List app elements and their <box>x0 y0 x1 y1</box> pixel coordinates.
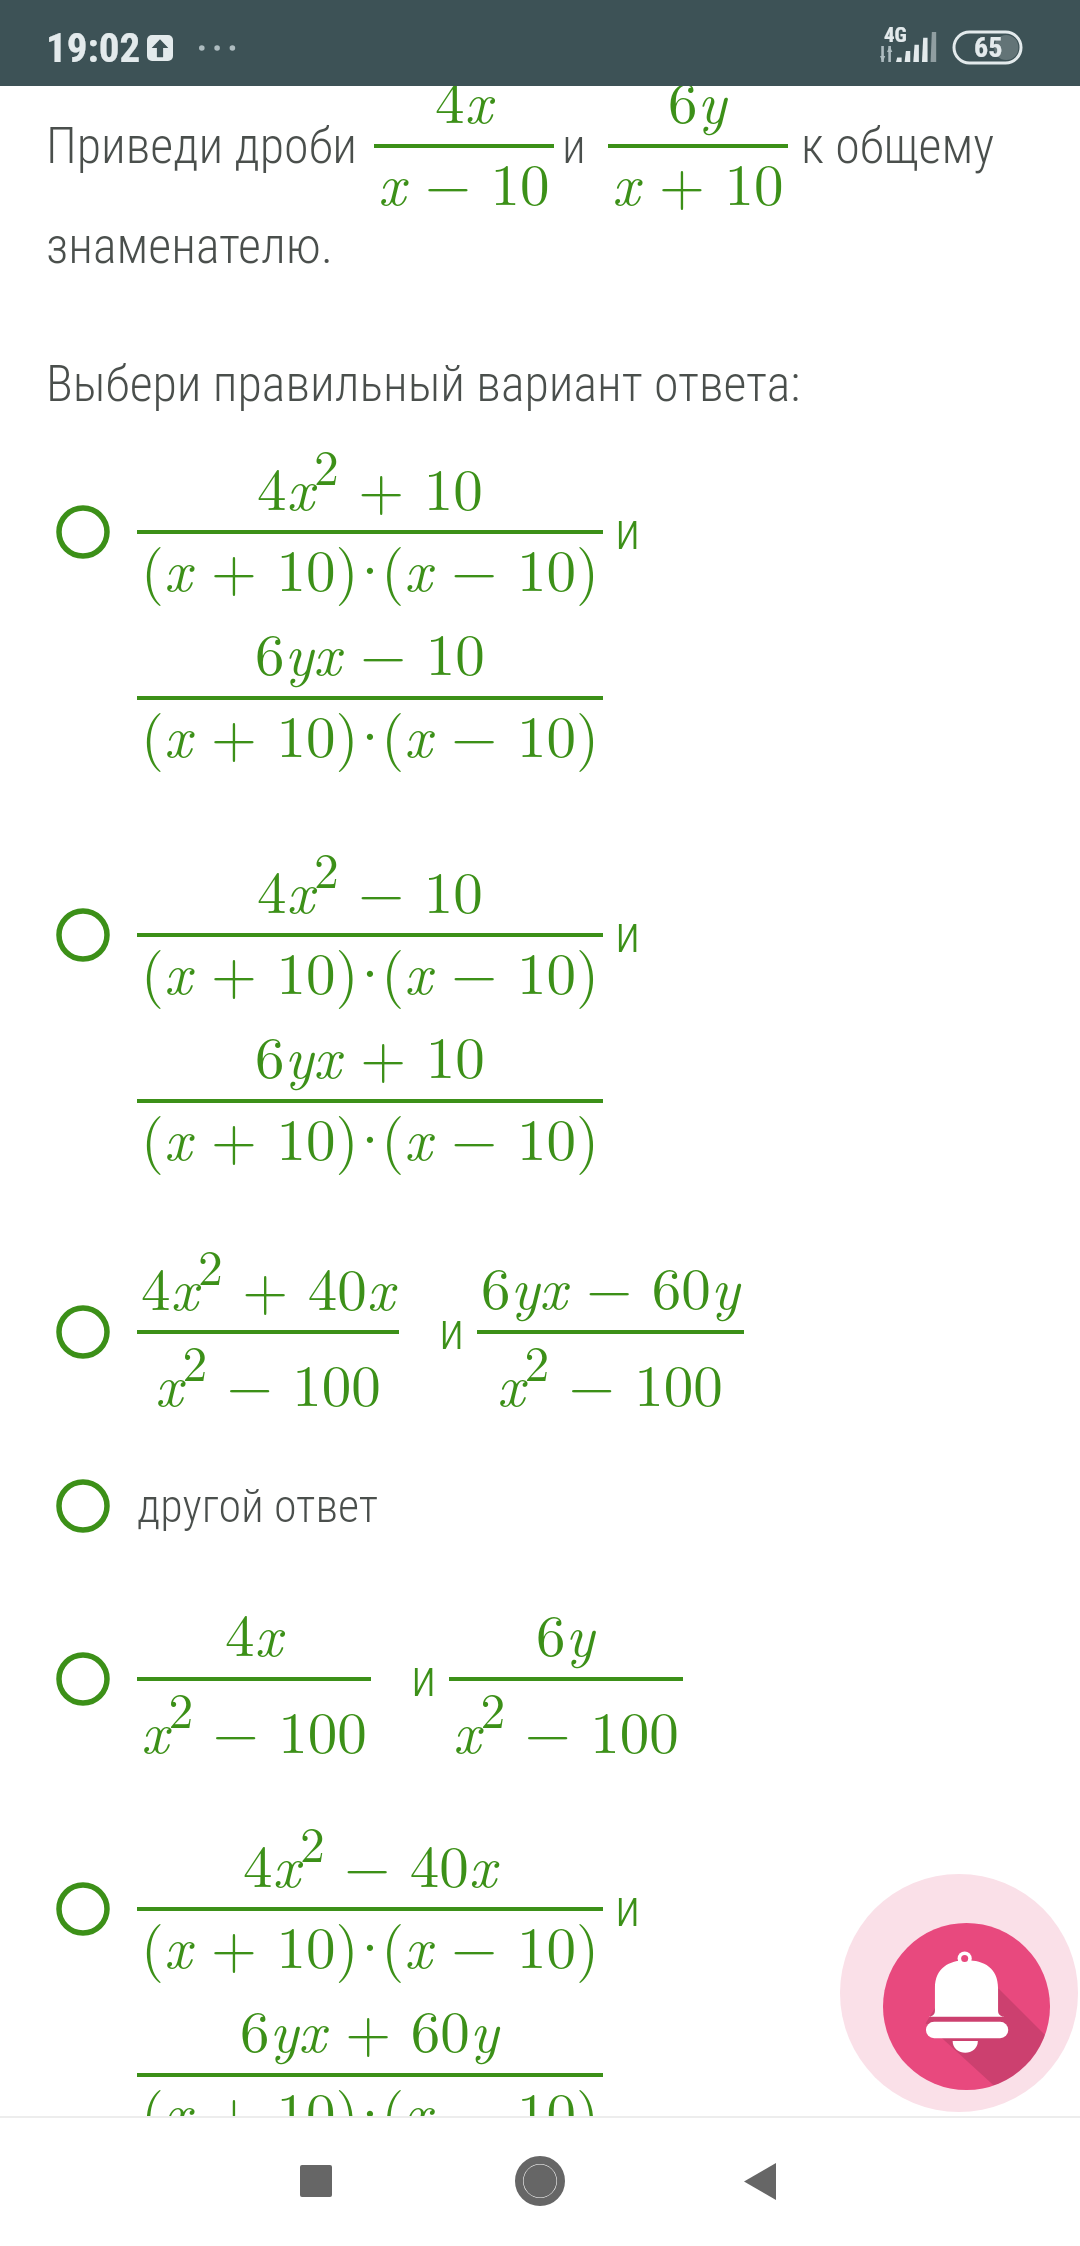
button[interactable]: 4x2 − 40x <box>0 1806 1080 2152</box>
staticText: Приведи дроби <box>46 117 358 176</box>
staticText: (x + 10)·(x − 10) <box>141 525 599 609</box>
staticText: x + 10 <box>612 139 784 223</box>
staticText: x2 − 100 <box>453 1672 679 1770</box>
button[interactable]: другой ответ <box>0 1478 1080 1534</box>
staticText: и <box>615 1879 641 1939</box>
staticText: (x + 10)·(x − 10) <box>141 1902 599 1986</box>
staticText: 65 <box>974 31 1003 62</box>
staticText: 6yx + 10 <box>255 1012 485 1096</box>
staticText: 6yx − 60y <box>481 1243 740 1327</box>
staticText: x − 10 <box>378 139 550 223</box>
button[interactable]: 4x2 + 40x <box>0 1229 1080 1423</box>
staticText: и <box>439 1302 465 1362</box>
staticText: 6yx + 60y <box>240 1986 499 2070</box>
staticText: к общему <box>801 117 995 176</box>
staticText: 4x2 + 10 <box>257 429 483 527</box>
staticText: 4x2 − 40x <box>243 1806 497 1904</box>
button[interactable]: Back <box>707 2128 813 2234</box>
staticText: (x + 10)·(x − 10) <box>141 928 599 1012</box>
button[interactable]: Notifications <box>883 1923 1050 2090</box>
button[interactable]: Home <box>487 2128 593 2234</box>
staticText: и <box>615 905 641 965</box>
staticText: 6yx − 10 <box>255 609 485 693</box>
staticText: другой ответ <box>137 1479 379 1533</box>
staticText: 19:02 <box>46 24 141 72</box>
staticText: и <box>615 502 641 562</box>
staticText: 4x2 − 10 <box>257 832 483 930</box>
staticText: (x + 10)·(x − 10) <box>141 1094 599 1178</box>
staticText: и <box>411 1649 437 1709</box>
staticText: Выбери правильный вариант ответа: <box>46 355 801 414</box>
staticText: 4x <box>225 1590 282 1674</box>
staticText: x2 − 100 <box>141 1672 367 1770</box>
staticText: x2 − 100 <box>155 1325 381 1423</box>
button[interactable]: Recents <box>263 2128 369 2234</box>
button[interactable]: 4x2 − 10 <box>0 832 1080 1178</box>
button[interactable]: 4x <box>0 1590 1080 1770</box>
staticText: 4x <box>435 57 492 141</box>
staticText: 4G <box>884 23 907 48</box>
staticText: (x + 10)·(x − 10) <box>141 691 599 775</box>
staticText: 6y <box>536 1590 595 1674</box>
staticText: 4x2 + 40x <box>141 1229 395 1327</box>
staticText: (x + 10)·(x − 10) <box>141 2068 599 2152</box>
staticText: x2 − 100 <box>497 1325 723 1423</box>
button[interactable]: 4x2 + 10 <box>0 429 1080 775</box>
staticText: знаменателю. <box>46 217 333 276</box>
staticText: 6y <box>668 57 727 141</box>
staticText: и <box>562 118 586 174</box>
